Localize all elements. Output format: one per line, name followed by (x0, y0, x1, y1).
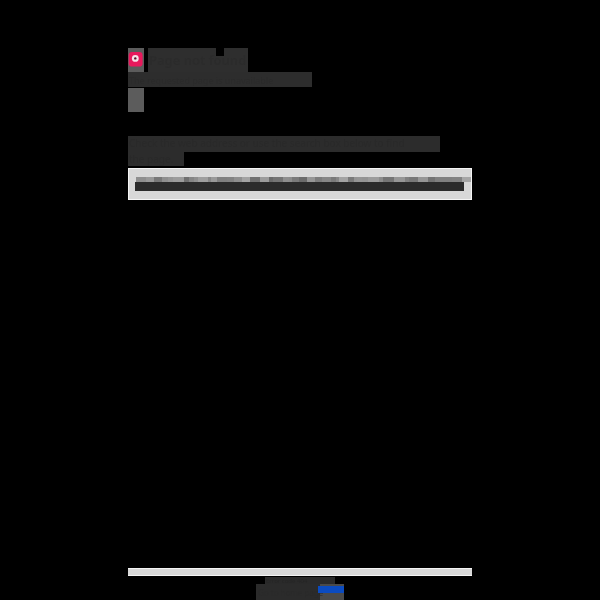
button[interactable]: Page not found (148, 48, 248, 72)
button[interactable]: Search (129, 169, 471, 199)
button[interactable]: Go to home page (256, 584, 344, 600)
button[interactable]: App icon (128, 48, 144, 72)
staticText: Go to home page (258, 587, 324, 598)
staticText: Page not found (149, 51, 247, 69)
